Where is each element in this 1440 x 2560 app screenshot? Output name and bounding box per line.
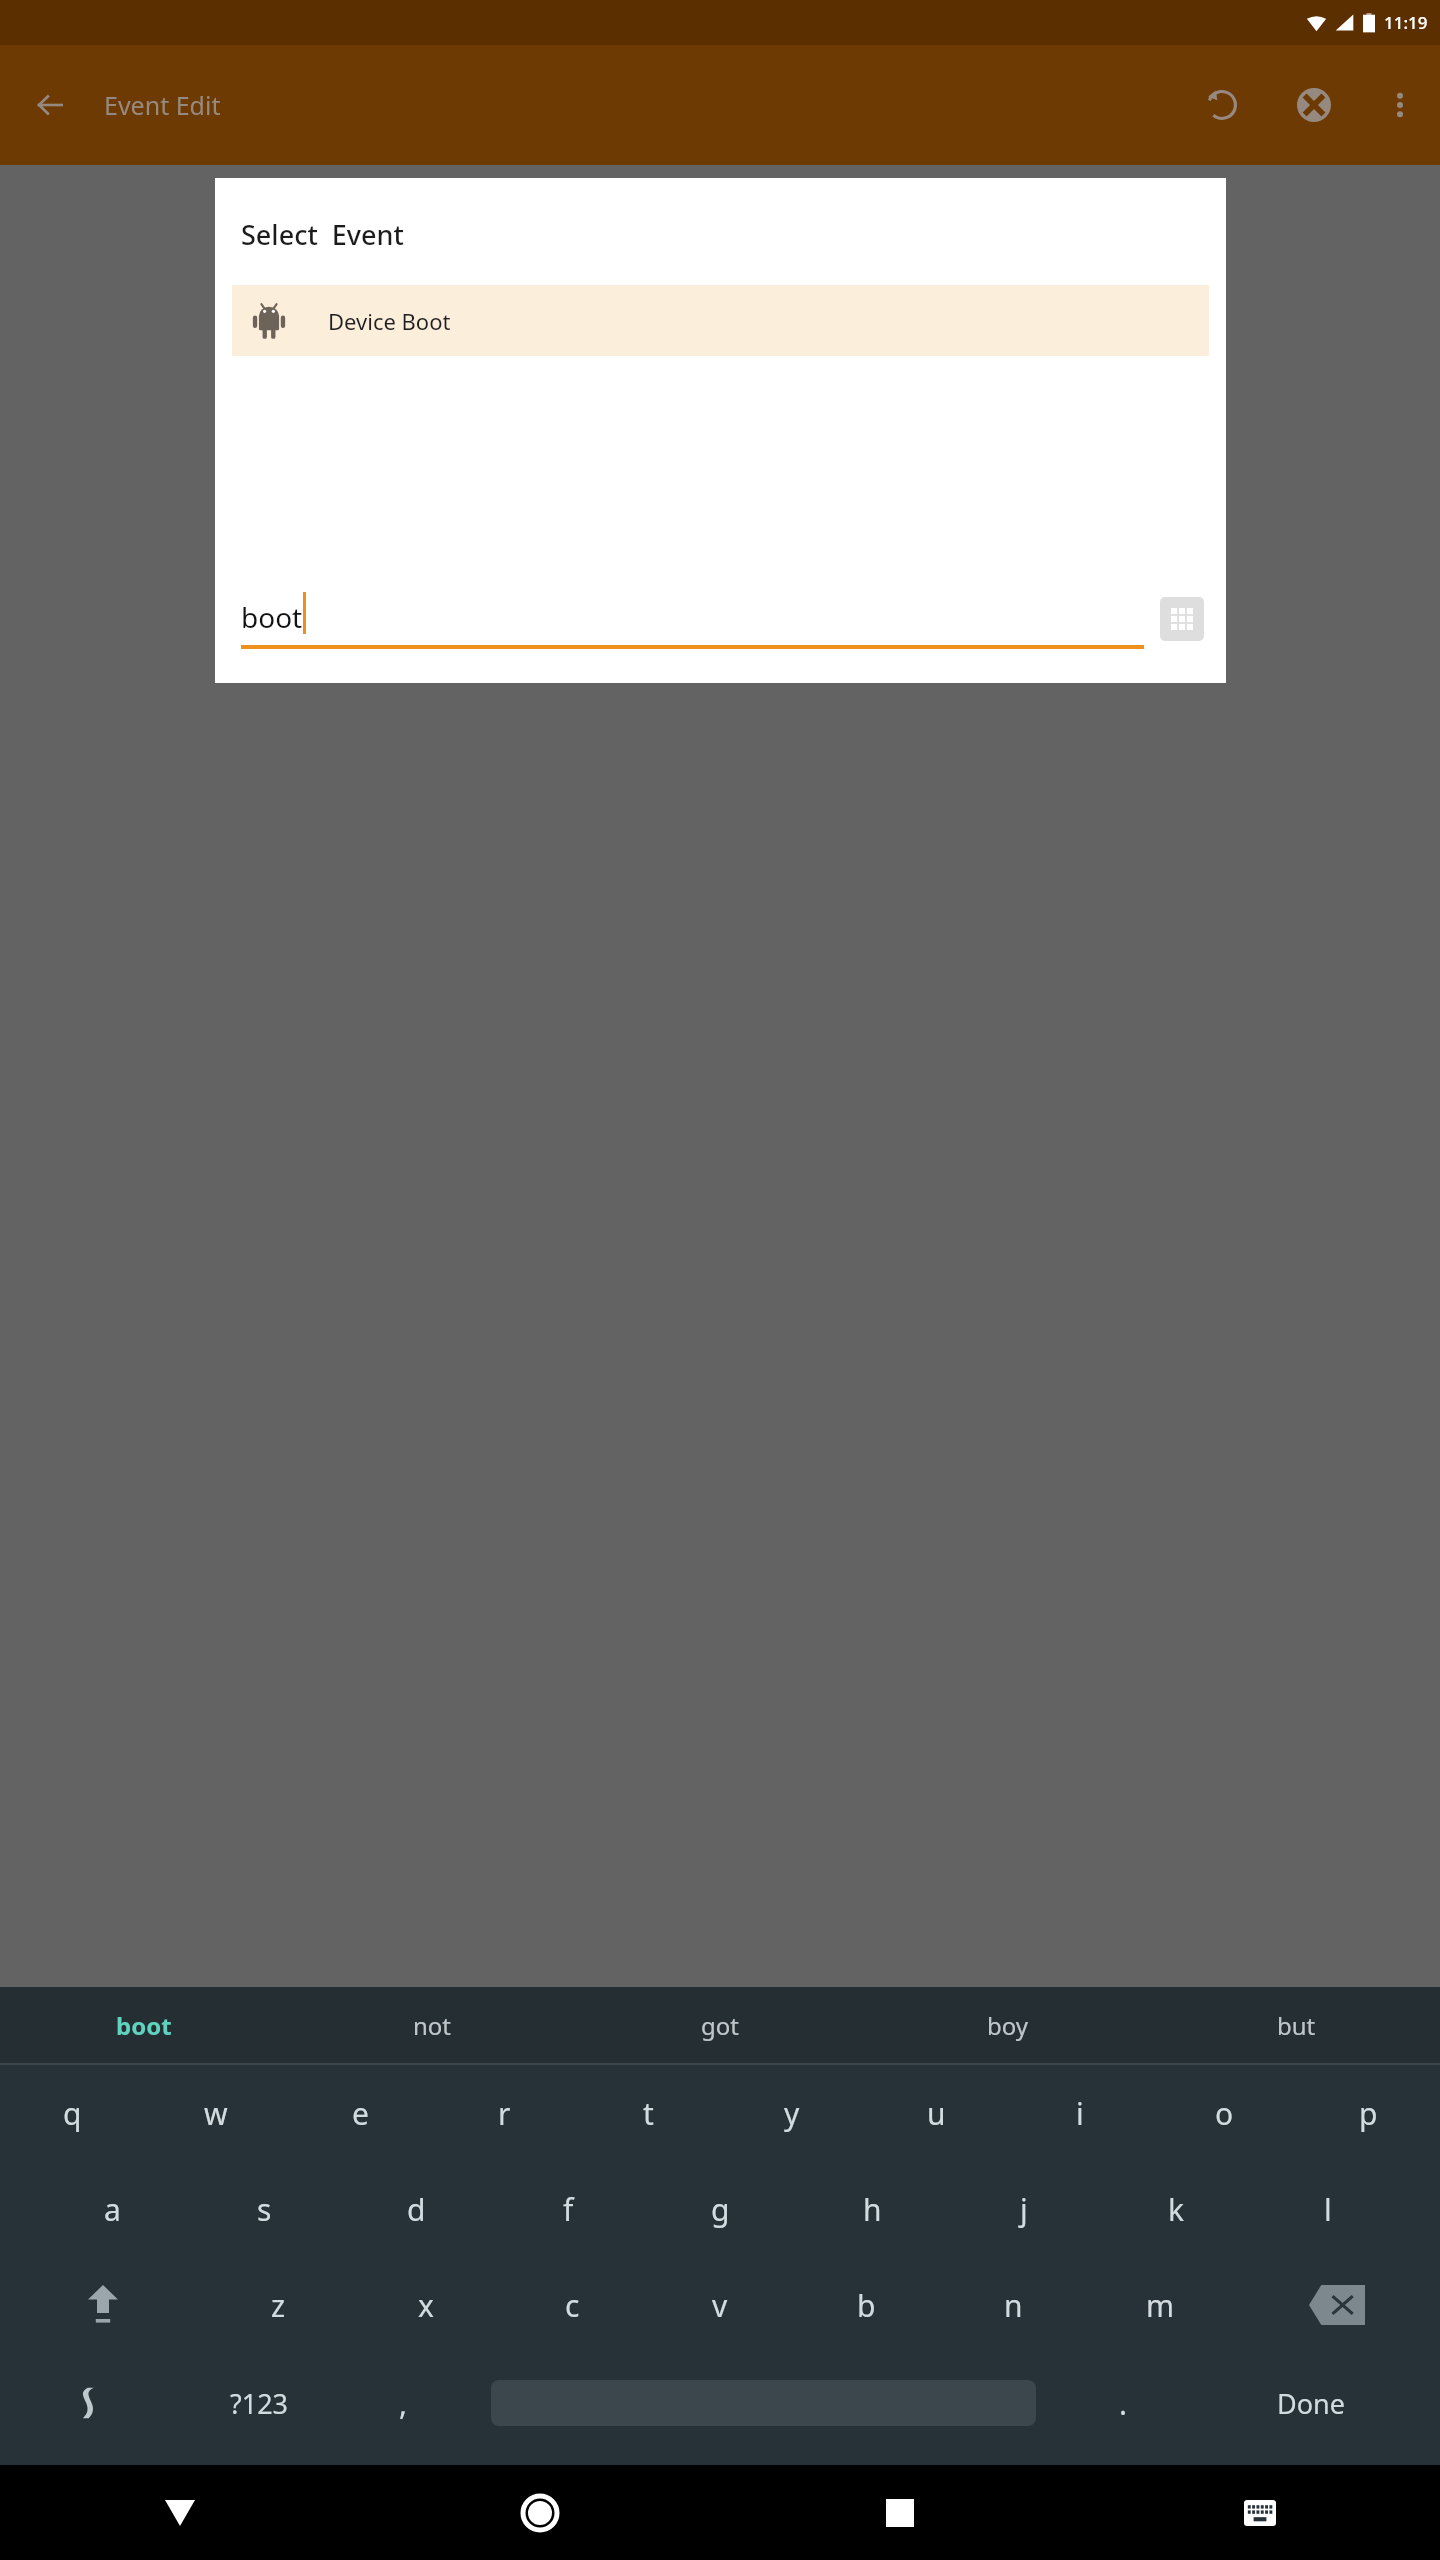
button[interactable]: Space xyxy=(461,2353,1066,2453)
button[interactable]: t xyxy=(576,2065,720,2161)
staticText: h xyxy=(863,2189,882,2230)
staticText: Device Boot xyxy=(328,306,451,336)
button[interactable]: u xyxy=(864,2065,1008,2161)
button[interactable]: e xyxy=(288,2065,432,2161)
staticText: boot xyxy=(116,2009,172,2042)
button[interactable]: g xyxy=(644,2161,796,2257)
button[interactable]: s xyxy=(188,2161,340,2257)
staticText: g xyxy=(711,2189,730,2230)
button[interactable]: Clear xyxy=(1282,73,1346,137)
staticText: . xyxy=(1119,2383,1128,2424)
staticText: boot xyxy=(241,598,303,636)
button[interactable]: Back xyxy=(22,77,78,133)
staticText: but xyxy=(1277,2009,1316,2042)
button[interactable]: Switch input xyxy=(0,2353,173,2453)
button[interactable]: c xyxy=(499,2257,646,2353)
button[interactable]: l xyxy=(1252,2161,1404,2257)
button[interactable]: Recents xyxy=(720,2465,1080,2560)
staticText: m xyxy=(1146,2285,1175,2326)
staticText: got xyxy=(701,2009,739,2042)
staticText: d xyxy=(407,2189,426,2230)
staticText: k xyxy=(1168,2189,1185,2230)
staticText: j xyxy=(1020,2189,1028,2230)
staticText: e xyxy=(352,2093,369,2134)
staticText: l xyxy=(1324,2189,1332,2230)
button[interactable]: x xyxy=(352,2257,499,2353)
staticText: f xyxy=(563,2189,574,2230)
button[interactable]: a xyxy=(36,2161,188,2257)
staticText: w xyxy=(204,2093,228,2134)
button[interactable]: Hide keyboard xyxy=(0,2465,360,2560)
staticText: c xyxy=(565,2285,580,2326)
button[interactable]: but xyxy=(1152,1987,1440,2063)
button[interactable]: w xyxy=(144,2065,288,2161)
staticText: y xyxy=(784,2093,800,2134)
button[interactable]: Device Boot xyxy=(232,285,1209,356)
button[interactable]: f xyxy=(492,2161,644,2257)
button[interactable]: Backspace xyxy=(1234,2257,1440,2353)
button[interactable]: ?123 xyxy=(173,2353,346,2453)
staticText: i xyxy=(1076,2093,1084,2134)
staticText: , xyxy=(399,2383,408,2424)
button[interactable]: k xyxy=(1100,2161,1252,2257)
staticText: u xyxy=(927,2093,946,2134)
button[interactable]: m xyxy=(1087,2257,1234,2353)
staticText: q xyxy=(63,2093,82,2134)
staticText: z xyxy=(271,2285,286,2326)
staticText: ?123 xyxy=(230,2385,289,2422)
staticText: 11:19 xyxy=(1384,11,1428,34)
button[interactable]: o xyxy=(1152,2065,1296,2161)
staticText: r xyxy=(498,2093,511,2134)
button[interactable]: z xyxy=(205,2257,352,2353)
staticText: Select Event xyxy=(241,216,404,253)
button[interactable]: Undo xyxy=(1190,73,1254,137)
staticText: a xyxy=(104,2189,121,2230)
staticText: n xyxy=(1004,2285,1023,2326)
staticText: s xyxy=(257,2189,272,2230)
button[interactable]: boot xyxy=(0,1987,288,2063)
button[interactable]: Shift xyxy=(0,2257,205,2353)
button[interactable]: r xyxy=(432,2065,576,2161)
button[interactable]: h xyxy=(796,2161,948,2257)
button[interactable]: not xyxy=(288,1987,576,2063)
button[interactable]: d xyxy=(340,2161,492,2257)
staticText: o xyxy=(1215,2093,1234,2134)
button[interactable]: v xyxy=(646,2257,793,2353)
button[interactable]: . xyxy=(1066,2353,1181,2453)
button[interactable]: , xyxy=(346,2353,461,2453)
button[interactable]: More options xyxy=(1368,73,1432,137)
staticText: boy xyxy=(987,2009,1029,2042)
button[interactable]: b xyxy=(793,2257,940,2353)
staticText: b xyxy=(857,2285,876,2326)
staticText: p xyxy=(1359,2093,1378,2134)
staticText: Event Edit xyxy=(104,88,221,122)
staticText: Done xyxy=(1277,2385,1345,2422)
button[interactable]: Home xyxy=(360,2465,720,2560)
staticText: v xyxy=(712,2285,728,2326)
button[interactable]: Done xyxy=(1181,2353,1440,2453)
staticText: x xyxy=(418,2285,434,2326)
button[interactable]: i xyxy=(1008,2065,1152,2161)
button[interactable]: q xyxy=(0,2065,144,2161)
button[interactable]: Show all events xyxy=(1160,597,1204,641)
staticText: not xyxy=(413,2009,452,2042)
button[interactable]: got xyxy=(576,1987,864,2063)
button[interactable]: j xyxy=(948,2161,1100,2257)
button[interactable]: boy xyxy=(864,1987,1152,2063)
button[interactable]: y xyxy=(720,2065,864,2161)
staticText: t xyxy=(643,2093,654,2134)
button[interactable]: n xyxy=(940,2257,1087,2353)
button[interactable]: p xyxy=(1296,2065,1440,2161)
button[interactable]: Keyboard xyxy=(1080,2465,1440,2560)
